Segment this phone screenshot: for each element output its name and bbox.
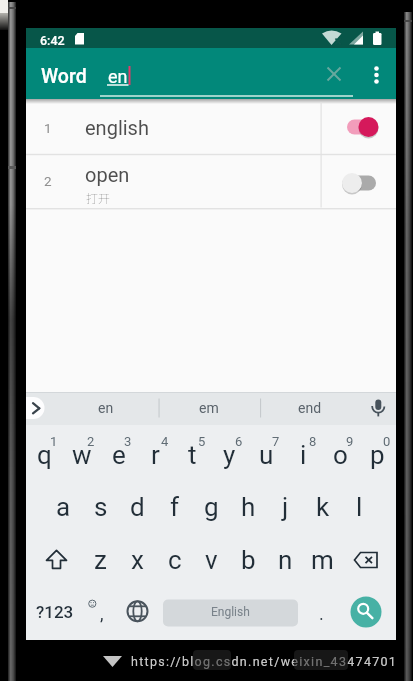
staticText: x (131, 545, 144, 575)
button[interactable]: t (174, 429, 211, 481)
staticText: k (316, 492, 330, 522)
button[interactable]: z (82, 534, 119, 586)
staticText: i (300, 440, 307, 470)
staticText: en (108, 66, 128, 87)
staticText: 6:42 (40, 33, 65, 48)
button[interactable] (123, 597, 154, 628)
button[interactable]: m (304, 534, 341, 586)
staticText: open (85, 163, 130, 186)
staticText: https://blog.csdn.net/weixin_43474701 (131, 654, 398, 669)
button[interactable]: s (82, 481, 119, 533)
button[interactable] (360, 48, 396, 99)
staticText: , (100, 603, 104, 624)
button[interactable]: a (45, 481, 82, 533)
button[interactable]: n (267, 534, 304, 586)
staticText: 0 (383, 434, 391, 449)
button[interactable]: h (230, 481, 267, 533)
button[interactable]: o (322, 429, 359, 481)
staticText: English (211, 605, 250, 619)
button[interactable] (340, 168, 386, 198)
staticText: m (311, 545, 334, 575)
button[interactable]: g (193, 481, 230, 533)
button[interactable]: i (285, 429, 322, 481)
button[interactable]: em (179, 393, 239, 423)
staticText: 7 (272, 434, 280, 449)
button[interactable]: r (137, 429, 174, 481)
button[interactable]: p (359, 429, 396, 481)
button[interactable]: x (119, 534, 156, 586)
button[interactable]: y (211, 429, 248, 481)
staticText: 2 (87, 434, 95, 449)
staticText: en (98, 400, 114, 416)
staticText: 8 (309, 434, 317, 449)
button[interactable]: English (162, 598, 298, 626)
staticText: v (205, 545, 218, 575)
staticText: . (319, 603, 324, 624)
staticText: e (112, 440, 126, 470)
button[interactable]: f (156, 481, 193, 533)
staticText: z (94, 545, 107, 575)
button[interactable]: l (341, 481, 378, 533)
staticText: 打开 (86, 189, 111, 206)
staticText: 1 (44, 120, 52, 136)
button[interactable]: end (280, 393, 340, 423)
button[interactable]: q (26, 429, 63, 481)
staticText: b (241, 545, 256, 575)
button[interactable]: u (248, 429, 285, 481)
button[interactable]: d (119, 481, 156, 533)
staticText: n (278, 545, 293, 575)
button[interactable]: b (230, 534, 267, 586)
button[interactable]: e (100, 429, 137, 481)
staticText: j (282, 492, 289, 522)
staticText: ?123 (36, 602, 74, 622)
staticText: r (151, 440, 160, 470)
staticText: w (72, 440, 92, 470)
staticText: a (56, 492, 71, 522)
button[interactable]: v (193, 534, 230, 586)
staticText: 5 (198, 434, 206, 449)
staticText: 9 (346, 434, 354, 449)
staticText: 3 (124, 434, 132, 449)
staticText: 1 (50, 434, 58, 449)
staticText: c (168, 545, 182, 575)
staticText: 2 (44, 173, 52, 189)
staticText: english (85, 116, 149, 139)
button[interactable] (350, 596, 382, 628)
staticText: d (130, 492, 145, 522)
staticText: s (94, 492, 108, 522)
staticText: u (259, 440, 274, 470)
button[interactable] (340, 112, 386, 142)
staticText: end (298, 400, 322, 416)
staticText: y (223, 440, 236, 470)
staticText: l (356, 492, 363, 522)
button[interactable] (37, 533, 77, 585)
button[interactable]: c (156, 534, 193, 586)
staticText: f (170, 492, 180, 522)
staticText: t (188, 440, 197, 470)
button[interactable]: 1 (18, 113, 78, 143)
button[interactable] (26, 154, 396, 207)
button[interactable]: . (306, 593, 336, 633)
staticText: Word (41, 65, 87, 88)
staticText: g (204, 492, 219, 522)
button[interactable]: en (76, 393, 136, 423)
staticText: q (37, 440, 52, 470)
button[interactable] (346, 533, 386, 585)
button[interactable] (316, 48, 352, 99)
staticText: 6 (235, 434, 243, 449)
staticText: p (370, 440, 385, 470)
button[interactable]: ?123 (28, 592, 82, 632)
staticText: h (241, 492, 256, 522)
staticText: em (199, 400, 219, 416)
staticText: o (333, 440, 348, 470)
staticText: 4 (161, 434, 169, 449)
button[interactable]: k (304, 481, 341, 533)
button[interactable]: j (267, 481, 304, 533)
button[interactable]: w (63, 429, 100, 481)
button[interactable] (26, 99, 396, 154)
